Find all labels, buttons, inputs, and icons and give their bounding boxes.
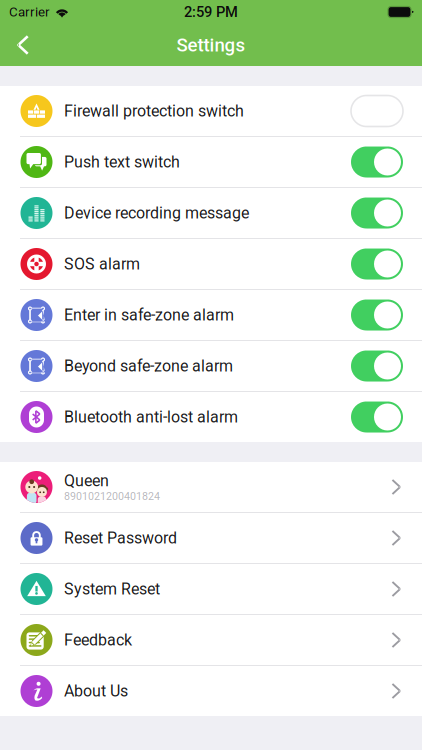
staticText: SOS alarm [64, 255, 140, 273]
button[interactable]: System Reset [0, 564, 422, 614]
button[interactable]: Enter in safe-zone alarm [0, 290, 422, 340]
staticText: 2:59 PM [184, 3, 238, 21]
staticText: Feedback [64, 631, 132, 649]
button[interactable]: Queen [0, 462, 422, 512]
staticText: 8901021200401824 [64, 490, 160, 503]
button[interactable]: Reset Password [0, 513, 422, 563]
staticText: Device recording message [64, 204, 249, 222]
button[interactable]: About Us [0, 666, 422, 716]
staticText: Firewall protection switch [64, 102, 244, 120]
staticText: System Reset [64, 580, 160, 598]
staticText: Queen [64, 471, 109, 490]
staticText: About Us [64, 682, 128, 700]
staticText: Enter in safe-zone alarm [64, 306, 234, 324]
staticText: Beyond safe-zone alarm [64, 357, 233, 375]
button[interactable]: Firewall protection switch [0, 86, 422, 136]
button[interactable]: Bluetooth anti-lost alarm [0, 392, 422, 442]
button[interactable]: Back [0, 24, 46, 66]
staticText: Settings [176, 34, 245, 56]
button[interactable]: Device recording message [0, 188, 422, 238]
staticText: Push text switch [64, 153, 180, 171]
button[interactable]: Feedback [0, 615, 422, 665]
button[interactable]: Push text switch [0, 137, 422, 187]
button[interactable]: Beyond safe-zone alarm [0, 341, 422, 391]
button[interactable]: SOS alarm [0, 239, 422, 289]
staticText: Bluetooth anti-lost alarm [64, 408, 238, 426]
staticText: Reset Password [64, 529, 177, 547]
staticText: Carrier [9, 4, 50, 20]
